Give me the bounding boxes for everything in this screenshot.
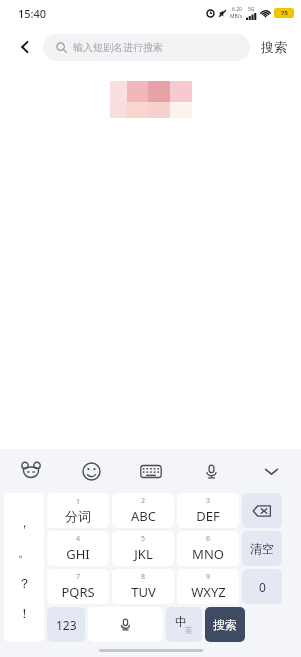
button[interactable]: Hide keyboard bbox=[241, 449, 301, 493]
staticText: GHI bbox=[66, 545, 90, 563]
button[interactable]: 搜索 bbox=[261, 39, 287, 55]
staticText: 5 bbox=[141, 534, 146, 544]
button[interactable]: Space and voice input bbox=[88, 607, 163, 642]
staticText: 3 bbox=[206, 496, 211, 506]
staticText: 4 bbox=[76, 534, 81, 544]
staticText: 5G bbox=[248, 6, 255, 13]
staticText: WXYZ bbox=[191, 583, 226, 601]
staticText: 8 bbox=[141, 572, 146, 582]
staticText: TUV bbox=[131, 583, 156, 601]
button[interactable]: 5 bbox=[112, 531, 174, 566]
staticText: ！ bbox=[18, 605, 31, 621]
staticText: 中 bbox=[175, 614, 187, 629]
staticText: MB/s bbox=[230, 13, 243, 20]
staticText: 搜索 bbox=[261, 39, 287, 55]
button[interactable]: 中 bbox=[166, 607, 202, 642]
button[interactable]: 3 bbox=[177, 493, 239, 528]
button[interactable]: 搜索 bbox=[205, 607, 245, 642]
staticText: MNO bbox=[192, 545, 224, 563]
button[interactable]: Emoji bbox=[61, 449, 121, 493]
staticText: 7 bbox=[76, 572, 81, 582]
button[interactable]: Baidu input method bbox=[0, 449, 61, 493]
button[interactable]: 输入短剧名进行搜索 bbox=[43, 34, 250, 61]
staticText: 搜索 bbox=[213, 617, 237, 632]
staticText: 输入短剧名进行搜索 bbox=[73, 41, 163, 54]
button[interactable]: 2 bbox=[112, 493, 174, 528]
staticText: 6.20 bbox=[232, 6, 242, 13]
staticText: 15:40 bbox=[18, 6, 47, 21]
staticText: 9 bbox=[206, 572, 211, 582]
button[interactable]: Back bbox=[12, 34, 38, 60]
staticText: ， bbox=[18, 514, 31, 530]
staticText: 清空 bbox=[250, 541, 274, 556]
button[interactable]: ， bbox=[4, 493, 44, 642]
staticText: 6 bbox=[206, 534, 211, 544]
staticText: ？ bbox=[18, 575, 31, 591]
staticText: 分词 bbox=[65, 508, 91, 524]
button[interactable]: 7 bbox=[47, 569, 109, 604]
button[interactable]: 123 bbox=[47, 607, 85, 642]
staticText: 123 bbox=[56, 617, 77, 633]
staticText: PQRS bbox=[61, 583, 95, 601]
button[interactable]: Switch keyboard layout bbox=[121, 449, 181, 493]
button[interactable]: 清空 bbox=[242, 531, 282, 566]
button[interactable]: Voice input bbox=[181, 449, 241, 493]
staticText: 0 bbox=[259, 579, 266, 595]
staticText: 1 bbox=[76, 497, 81, 507]
staticText: 。 bbox=[18, 544, 31, 560]
staticText: 英 bbox=[185, 625, 193, 635]
staticText: 2 bbox=[141, 496, 146, 506]
button[interactable]: 1 bbox=[47, 493, 109, 528]
staticText: ABC bbox=[131, 507, 156, 525]
staticText: JKL bbox=[134, 545, 153, 563]
staticText: 75 bbox=[281, 9, 288, 17]
button[interactable]: 9 bbox=[177, 569, 239, 604]
button[interactable]: 4 bbox=[47, 531, 109, 566]
button[interactable]: Backspace bbox=[242, 493, 282, 528]
button[interactable]: 8 bbox=[112, 569, 174, 604]
staticText: DEF bbox=[196, 507, 220, 525]
button[interactable]: 6 bbox=[177, 531, 239, 566]
button[interactable]: 0 bbox=[242, 569, 282, 604]
